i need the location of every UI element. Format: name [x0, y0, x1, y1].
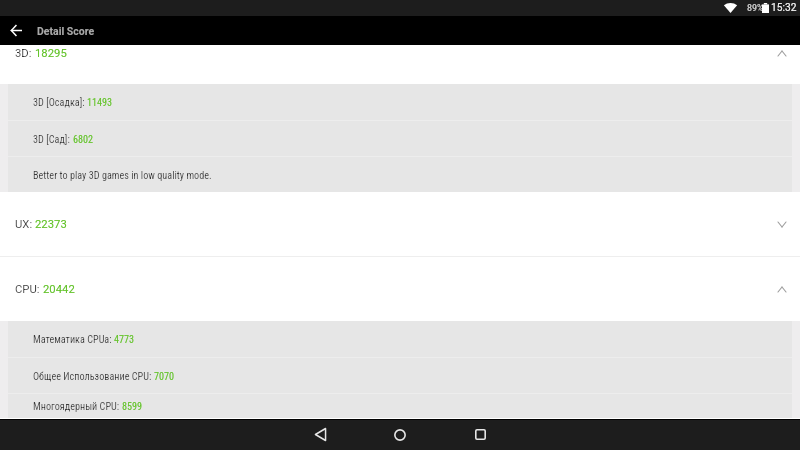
button[interactable]: Общее Использование CPU:: [8, 358, 792, 393]
staticText: 6802: [73, 134, 94, 146]
staticText: 89%: [747, 3, 764, 13]
button[interactable]: Better to play 3D games in low quality m…: [8, 157, 792, 192]
staticText: UX:: [15, 218, 35, 231]
button[interactable]: Recent apps: [456, 419, 504, 450]
button[interactable]: UX:: [0, 192, 800, 256]
staticText: 15:32: [771, 2, 797, 14]
staticText: Better to play 3D games in low quality m…: [33, 170, 212, 182]
staticText: 3D [Осадка]:: [33, 97, 87, 109]
staticText: 4773: [114, 334, 135, 346]
staticText: 3D:: [15, 47, 35, 60]
staticText: Математика CPUa:: [33, 334, 114, 346]
button[interactable]: Многоядерный CPU:: [8, 394, 792, 418]
staticText: Detail Score: [37, 25, 95, 37]
button[interactable]: Home: [376, 419, 424, 450]
button[interactable]: Back: [2, 16, 30, 45]
button[interactable]: Back: [296, 419, 344, 450]
button[interactable]: 3D:: [0, 45, 800, 84]
staticText: 8599: [122, 401, 143, 413]
staticText: 7070: [154, 371, 175, 383]
staticText: 18295: [35, 47, 67, 60]
button[interactable]: 3D [Осадка]:: [8, 84, 792, 120]
staticText: Многоядерный CPU:: [33, 401, 122, 413]
staticText: 20442: [43, 283, 75, 296]
staticText: 22373: [35, 218, 67, 231]
button[interactable]: Математика CPUa:: [8, 321, 792, 357]
staticText: CPU:: [15, 283, 43, 296]
button[interactable]: 3D [Сад]:: [8, 121, 792, 156]
staticText: 3D [Сад]:: [33, 134, 73, 146]
button[interactable]: CPU:: [0, 257, 800, 321]
staticText: Общее Использование CPU:: [33, 371, 154, 383]
staticText: 11493: [87, 97, 113, 109]
